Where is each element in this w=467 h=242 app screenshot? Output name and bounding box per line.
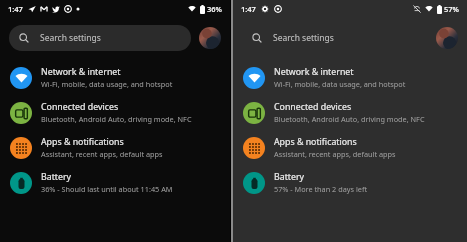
staticText: Bluetooth, Android Auto, driving mode, N… <box>274 114 425 124</box>
staticText: Assistant, recent apps, default apps <box>274 149 396 159</box>
staticText: Search settings <box>273 32 334 44</box>
staticText: Bluetooth, Android Auto, driving mode, N… <box>41 114 192 124</box>
staticText: Apps & notifications <box>41 136 124 148</box>
staticText: Apps & notifications <box>274 136 357 148</box>
staticText: Wi-Fi, mobile, data usage, and hotspot <box>274 79 406 89</box>
staticText: Assistant, recent apps, default apps <box>41 149 163 159</box>
staticText: Connected devices <box>274 101 352 113</box>
staticText: 1:47 <box>241 4 256 14</box>
button[interactable]: Search settings <box>9 25 191 51</box>
staticText: Battery <box>274 171 305 183</box>
staticText: 36% - Should last until about 11:45 AM <box>41 184 173 194</box>
staticText: 57% <box>444 4 459 14</box>
button[interactable]: Account <box>199 27 221 49</box>
button[interactable]: Battery <box>0 165 230 200</box>
button[interactable]: Search settings <box>242 25 428 51</box>
staticText: Connected devices <box>41 101 119 113</box>
staticText: Network & internet <box>274 66 354 78</box>
staticText: 36% <box>207 4 222 14</box>
button[interactable]: Account <box>436 27 458 49</box>
button[interactable]: Battery <box>233 165 467 200</box>
staticText: Wi-Fi, mobile, data usage, and hotspot <box>41 79 173 89</box>
button[interactable]: Connected devices <box>0 95 230 130</box>
button[interactable]: Apps & notifications <box>0 130 230 165</box>
button[interactable]: Network & internet <box>0 60 230 95</box>
staticText: 1:47 <box>8 4 23 14</box>
staticText: Network & internet <box>41 66 121 78</box>
staticText: Battery <box>41 171 72 183</box>
button[interactable]: Network & internet <box>233 60 467 95</box>
button[interactable]: Apps & notifications <box>233 130 467 165</box>
button[interactable]: Connected devices <box>233 95 467 130</box>
staticText: 57% - More than 2 days left <box>274 184 368 194</box>
staticText: Search settings <box>40 32 101 44</box>
